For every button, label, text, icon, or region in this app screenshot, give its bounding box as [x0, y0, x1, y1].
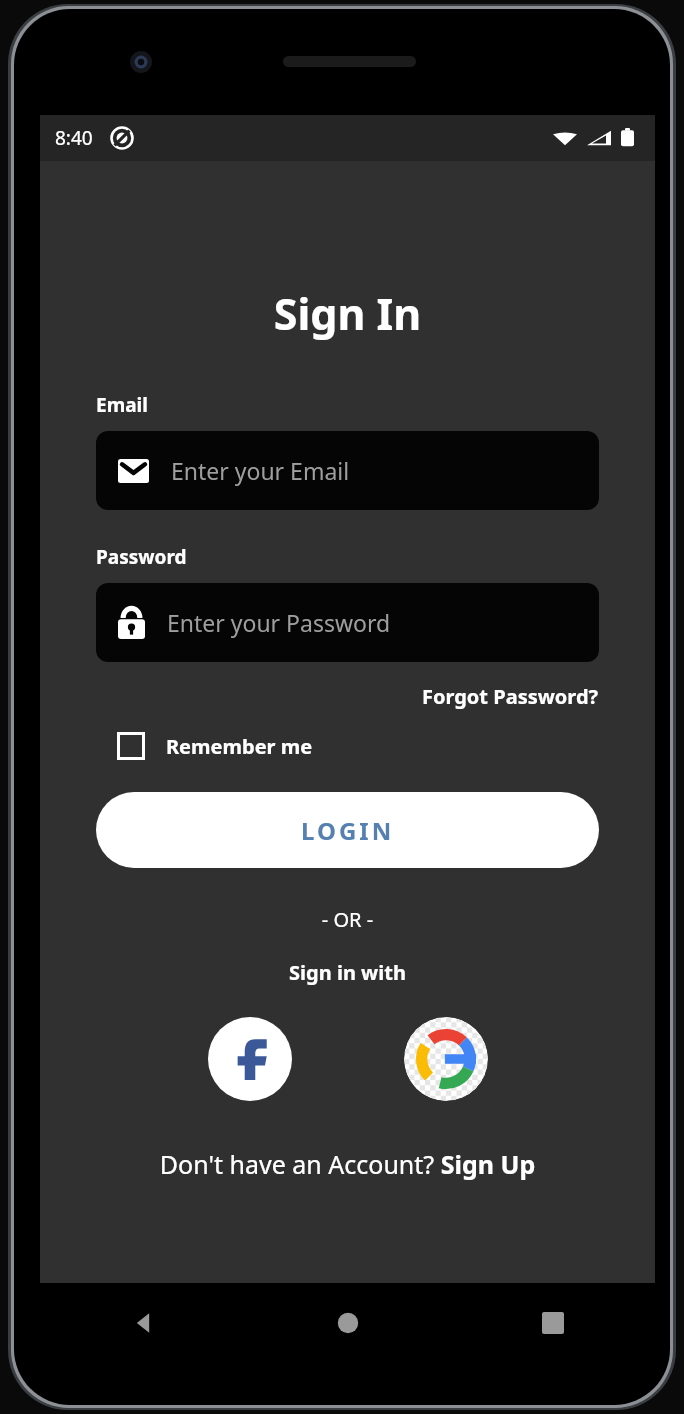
button[interactable]: LOGIN [96, 792, 599, 868]
button[interactable]: Forgot Password? [422, 683, 599, 710]
staticText: 8:40 [55, 125, 93, 151]
staticText: Password [96, 544, 187, 570]
staticText: LOGIN [301, 814, 395, 847]
button[interactable]: Remember me [96, 728, 313, 764]
button[interactable]: Sign in with Google [404, 1017, 488, 1101]
button[interactable]: Back [40, 1283, 245, 1363]
button[interactable]: Enter your Email [96, 431, 599, 510]
staticText: Sign In [40, 284, 655, 343]
button[interactable]: Don't have an Account? Sign Up [40, 1147, 655, 1181]
button[interactable]: Enter your Password [96, 583, 599, 662]
staticText: Remember me [166, 733, 313, 760]
button[interactable]: Recent apps [450, 1283, 655, 1363]
button[interactable]: Home [245, 1283, 450, 1363]
staticText: Sign in with [40, 959, 655, 986]
staticText: Enter your Email [171, 455, 350, 486]
button[interactable]: Sign in with Facebook [208, 1017, 292, 1101]
staticText: Enter your Password [167, 607, 391, 638]
staticText: Email [96, 392, 148, 418]
staticText: - OR - [40, 906, 655, 933]
